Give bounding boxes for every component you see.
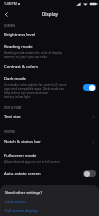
staticText: TEXT & FONT	[4, 106, 22, 110]
staticText: Allow selected apps to run in full scree…	[4, 160, 60, 164]
button[interactable]: Lock screen	[5, 199, 26, 204]
staticText: Dark mode	[4, 76, 26, 82]
button[interactable]: Auto-rotate screen	[0, 167, 99, 181]
button[interactable]: Contrast & colors	[0, 62, 99, 73]
button[interactable]: Turn off	[83, 84, 96, 91]
button[interactable]: Back	[0, 7, 12, 21]
button[interactable]: Text size	[0, 110, 99, 124]
staticText: Notch & status bar	[4, 139, 41, 145]
staticText: SYSTEM	[4, 130, 15, 134]
staticText: Reading mode	[4, 44, 33, 50]
button[interactable]: Notch & status bar	[0, 134, 99, 149]
staticText: SCREEN	[4, 24, 15, 28]
button[interactable]: Reading mode	[0, 41, 99, 62]
staticText: Contrast & colors	[4, 64, 38, 70]
staticText: Reading mode makes the color of display …	[4, 51, 63, 59]
button[interactable]: Brightness level	[0, 28, 99, 41]
button[interactable]: Dark mode	[0, 73, 99, 102]
staticText: Fullscreen mode	[4, 153, 37, 159]
staticText: Display	[42, 11, 58, 17]
staticText: 1:38 PM	[4, 1, 17, 6]
button[interactable]: Turn on	[83, 170, 96, 177]
staticText: Need other settings?	[5, 190, 43, 195]
button[interactable]: Full screen display	[5, 208, 38, 213]
staticText: Brightness level	[4, 32, 36, 38]
staticText: Text size	[4, 114, 21, 120]
staticText: Use darker color palette for system UI, …	[4, 83, 67, 99]
button[interactable]: Fullscreen mode	[0, 149, 99, 167]
staticText: Auto-rotate screen	[4, 171, 41, 177]
